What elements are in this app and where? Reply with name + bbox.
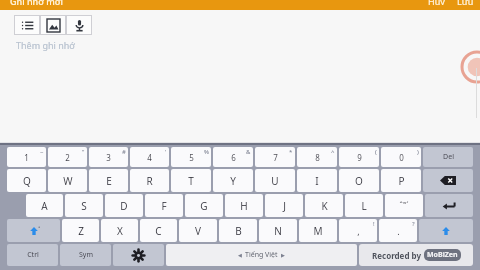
button[interactable]: C xyxy=(140,219,177,242)
button[interactable]: Checklist xyxy=(14,15,40,35)
staticText: ˆ˜ˊ xyxy=(399,200,409,211)
staticText: V xyxy=(195,224,201,238)
button[interactable]: Q xyxy=(7,169,46,192)
staticText: ( xyxy=(375,148,377,156)
button[interactable]: Image xyxy=(40,15,66,35)
staticText: * xyxy=(289,148,293,156)
staticText: 4 xyxy=(147,152,152,163)
staticText: & xyxy=(246,148,251,156)
staticText: F xyxy=(161,199,167,213)
button[interactable]: I xyxy=(297,169,337,192)
button[interactable]: Del xyxy=(423,147,473,167)
button[interactable]: 7 xyxy=(255,147,295,167)
button[interactable]: Shift xyxy=(7,219,60,242)
staticText: Y xyxy=(230,174,236,188)
staticText: Thêm ghi nhớ xyxy=(16,39,75,51)
button[interactable]: 0 xyxy=(381,147,421,167)
button[interactable]: Shift xyxy=(419,219,473,242)
staticText: D xyxy=(120,199,128,213)
staticText: E xyxy=(106,174,112,188)
button[interactable]: . xyxy=(379,219,417,242)
staticText: R xyxy=(146,174,153,188)
staticText: Ctrl xyxy=(27,250,39,260)
staticText: P xyxy=(398,174,405,188)
staticText: ^ xyxy=(331,148,335,156)
staticText: ◀ xyxy=(238,252,242,258)
button[interactable]: Sym xyxy=(60,244,111,266)
button[interactable]: 8 xyxy=(297,147,337,167)
button[interactable]: Settings xyxy=(113,244,164,266)
staticText: Z xyxy=(78,224,84,238)
staticText: " xyxy=(82,148,85,156)
button[interactable]: J xyxy=(265,194,303,217)
staticText: U xyxy=(271,174,279,188)
button[interactable]: A xyxy=(26,194,63,217)
button[interactable]: D xyxy=(105,194,143,217)
staticText: . xyxy=(397,225,400,237)
button[interactable]: E xyxy=(89,169,128,192)
button[interactable]: Enter xyxy=(425,194,473,217)
staticText: MoBiZen xyxy=(427,250,458,260)
staticText: N xyxy=(274,224,282,238)
button[interactable]: 1 xyxy=(7,147,46,167)
button[interactable]: R xyxy=(130,169,169,192)
button[interactable]: Voice xyxy=(66,15,92,35)
button[interactable]: O xyxy=(339,169,379,192)
staticText: I xyxy=(315,174,319,188)
button[interactable]: L xyxy=(345,194,383,217)
staticText: 2 xyxy=(65,152,70,163)
staticText: 8 xyxy=(315,152,320,163)
staticText: W xyxy=(63,174,73,188)
staticText: Sym xyxy=(79,250,93,260)
staticText: % xyxy=(204,148,209,156)
staticText: ' xyxy=(165,148,167,156)
staticText: B xyxy=(235,224,242,238)
staticText: Recorded by xyxy=(372,250,424,261)
staticText: X xyxy=(117,224,123,238)
button[interactable]: ˆ˜ˊ xyxy=(385,194,423,217)
button[interactable]: ◀ xyxy=(166,244,357,266)
staticText: Ghi nhớ mới xyxy=(10,0,63,5)
button[interactable]: K xyxy=(305,194,343,217)
button[interactable]: Z xyxy=(62,219,99,242)
staticText: Huỷ xyxy=(428,0,445,5)
staticText: S xyxy=(81,199,87,213)
button[interactable]: T xyxy=(171,169,211,192)
staticText: , xyxy=(357,225,360,237)
staticText: C xyxy=(155,224,162,238)
button[interactable]: Ctrl xyxy=(7,244,58,266)
button[interactable]: 5 xyxy=(171,147,211,167)
staticText: 0 xyxy=(399,152,404,163)
button[interactable]: U xyxy=(255,169,295,192)
button[interactable]: H xyxy=(225,194,263,217)
button[interactable]: F xyxy=(145,194,183,217)
staticText: 9 xyxy=(357,152,362,163)
staticText: A xyxy=(41,199,48,213)
button[interactable]: P xyxy=(381,169,421,192)
button[interactable]: , xyxy=(339,219,377,242)
staticText: ? xyxy=(412,220,415,228)
button[interactable]: 2 xyxy=(48,147,87,167)
button[interactable]: 4 xyxy=(130,147,169,167)
staticText: Del xyxy=(443,152,454,162)
button[interactable]: Backspace xyxy=(423,169,473,192)
staticText: G xyxy=(200,199,208,213)
button[interactable]: G xyxy=(185,194,223,217)
staticText: Q xyxy=(23,174,31,188)
staticText: ) xyxy=(417,148,419,156)
button[interactable]: B xyxy=(219,219,257,242)
staticText: 1 xyxy=(24,152,29,163)
staticText: Tiếng Việt xyxy=(245,250,278,260)
button[interactable]: V xyxy=(179,219,217,242)
button[interactable]: 3 xyxy=(89,147,128,167)
button[interactable]: S xyxy=(65,194,103,217)
button[interactable]: N xyxy=(259,219,297,242)
button[interactable]: 9 xyxy=(339,147,379,167)
button[interactable]: Y xyxy=(213,169,253,192)
staticText: 5 xyxy=(189,152,194,163)
staticText: K xyxy=(321,199,328,213)
button[interactable]: 6 xyxy=(213,147,253,167)
button[interactable]: W xyxy=(48,169,87,192)
button[interactable]: X xyxy=(101,219,138,242)
button[interactable]: M xyxy=(299,219,337,242)
